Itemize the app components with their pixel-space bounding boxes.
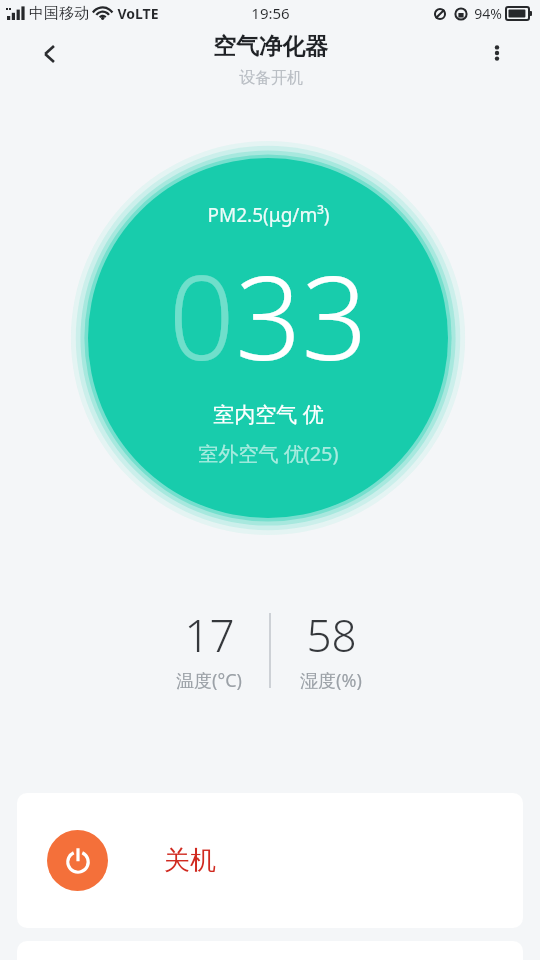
staticText: 温度(°C) — [176, 668, 242, 693]
button[interactable]: Back — [26, 30, 74, 78]
staticText: 设备开机 — [239, 68, 303, 88]
staticText: 33 — [235, 236, 368, 394]
staticText: 17 — [184, 605, 235, 665]
button[interactable]: 关机 — [17, 793, 523, 928]
staticText: 室内空气 优 — [213, 400, 324, 429]
staticText: 空气净化器 — [213, 32, 328, 61]
staticText: 关机 — [164, 844, 216, 877]
staticText: 室外空气 优(25) — [198, 440, 339, 467]
staticText: 湿度(%) — [300, 668, 362, 693]
staticText: 94% — [474, 4, 502, 23]
staticText: 19:56 — [251, 3, 290, 23]
staticText: VoLTE — [117, 4, 159, 23]
staticText: PM2.5(μg/m³) — [207, 202, 330, 228]
staticText: 0 — [168, 236, 235, 394]
staticText: 58 — [306, 605, 357, 665]
staticText: 中国移动 — [29, 4, 89, 23]
button[interactable]: More options — [474, 30, 520, 76]
